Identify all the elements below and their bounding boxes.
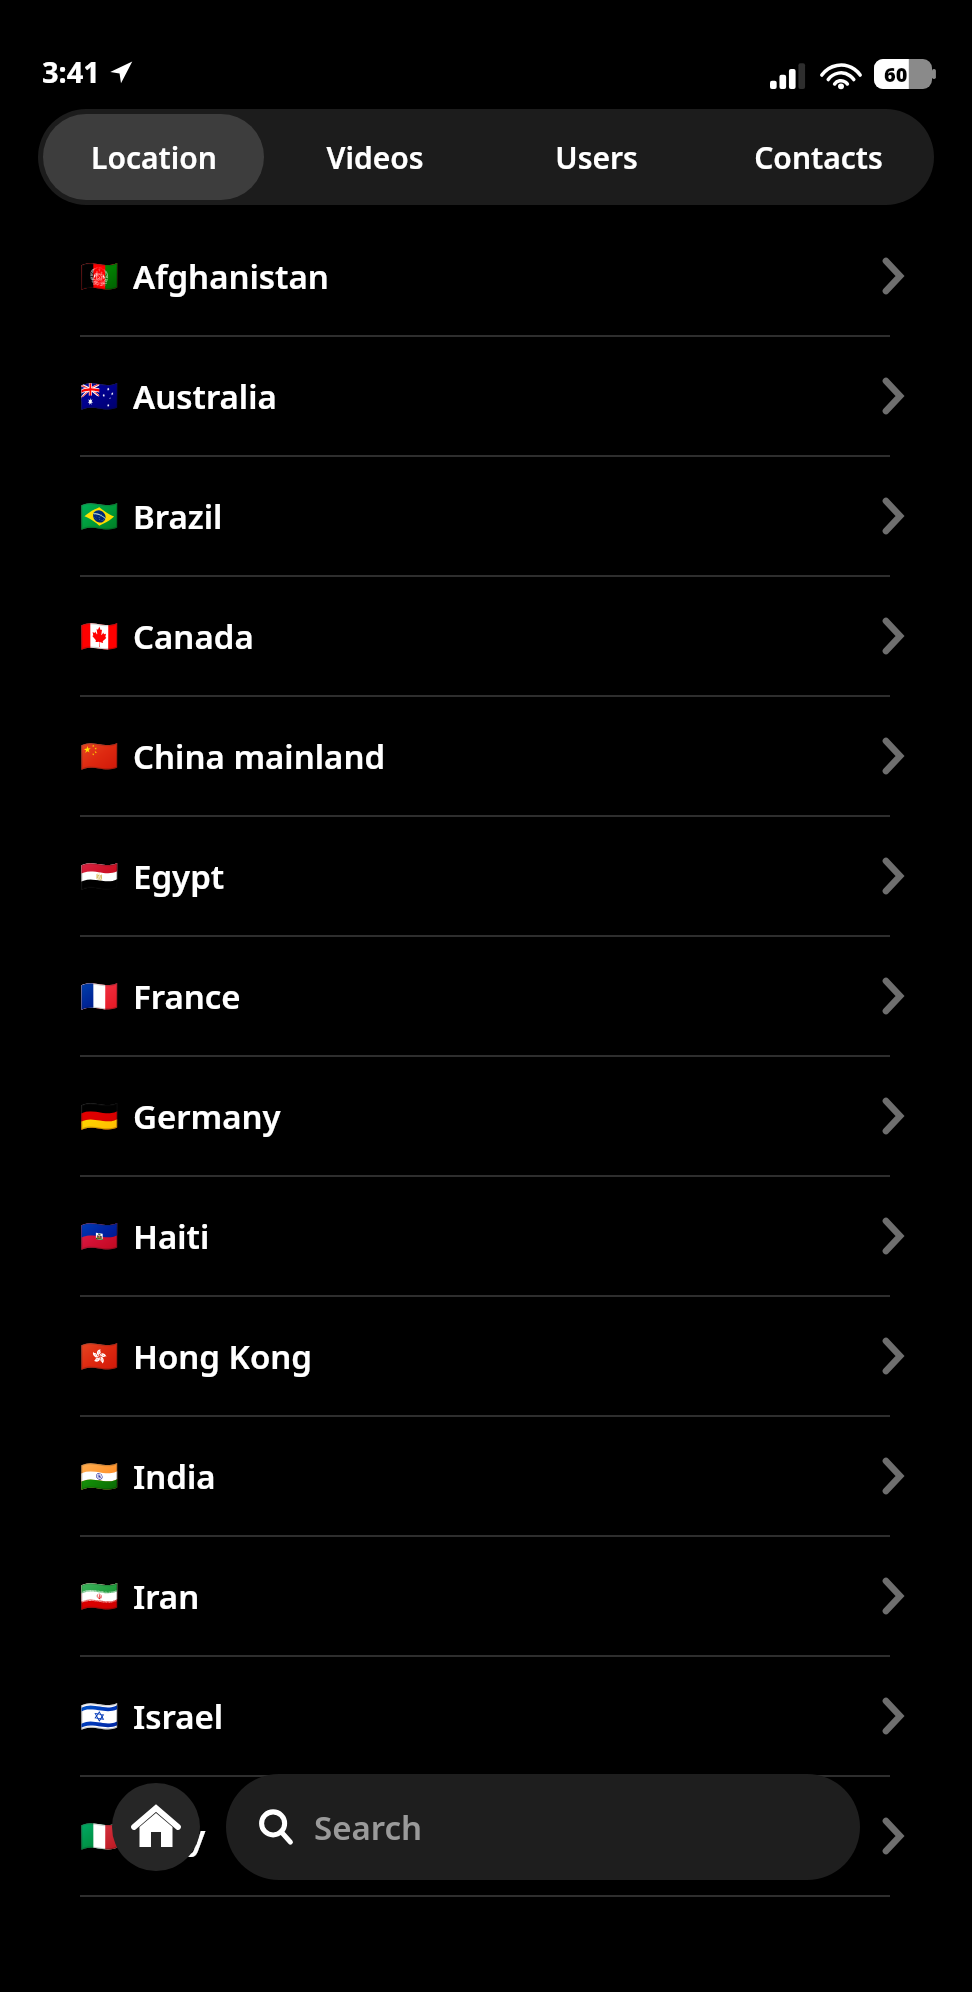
button[interactable]: Location xyxy=(43,114,264,200)
staticText: Italy xyxy=(133,1814,206,1859)
staticText: 🇩🇪 xyxy=(80,1098,119,1134)
staticText: 🇪🇬 xyxy=(80,858,119,894)
staticText: Hong Kong xyxy=(133,1334,313,1379)
staticText: Search xyxy=(314,1805,423,1850)
button[interactable]: 🇩🇪 xyxy=(0,1057,972,1175)
button[interactable]: Videos xyxy=(264,114,485,200)
staticText: Canada xyxy=(133,614,254,659)
staticText: 🇭🇹 xyxy=(80,1218,119,1254)
staticText: Egypt xyxy=(133,854,225,899)
button[interactable]: 🇮🇳 xyxy=(0,1417,972,1535)
staticText: China mainland xyxy=(133,734,386,779)
staticText: Israel xyxy=(133,1694,224,1739)
staticText: 🇨🇦 xyxy=(80,618,119,654)
button[interactable]: 🇭🇹 xyxy=(0,1177,972,1295)
button[interactable]: 🇮🇱 xyxy=(0,1657,972,1775)
staticText: Users xyxy=(555,137,638,178)
staticText: 🇮🇱 xyxy=(80,1698,119,1734)
staticText: Brazil xyxy=(133,494,223,539)
staticText: 3:41 xyxy=(42,52,100,91)
button[interactable]: 🇦🇺 xyxy=(0,337,972,455)
staticText: Afghanistan xyxy=(133,254,329,299)
staticText: Haiti xyxy=(133,1214,210,1259)
button[interactable]: Users xyxy=(485,114,707,200)
staticText: 🇨🇳 xyxy=(80,738,119,774)
staticText: India xyxy=(133,1454,216,1499)
staticText: 🇭🇰 xyxy=(80,1338,119,1374)
staticText: Iran xyxy=(133,1574,200,1619)
staticText: 🇧🇷 xyxy=(80,498,119,534)
staticText: 🇦🇫 xyxy=(80,258,119,294)
staticText: 60 xyxy=(884,61,908,88)
staticText: 🇮🇹 xyxy=(80,1818,119,1854)
button[interactable]: Contacts xyxy=(707,114,929,200)
button[interactable]: 🇦🇫 xyxy=(0,217,972,335)
button[interactable]: 🇧🇷 xyxy=(0,457,972,575)
staticText: 🇮🇷 xyxy=(80,1578,119,1614)
staticText: 🇫🇷 xyxy=(80,978,119,1014)
staticText: France xyxy=(133,974,241,1019)
staticText: 🇮🇳 xyxy=(80,1458,119,1494)
staticText: Contacts xyxy=(754,137,883,178)
button[interactable]: 🇮🇹 xyxy=(0,1777,972,1895)
button[interactable]: Home xyxy=(112,1783,200,1871)
staticText: Germany xyxy=(133,1094,281,1139)
button[interactable]: 🇨🇦 xyxy=(0,577,972,695)
button[interactable]: 🇨🇳 xyxy=(0,697,972,815)
staticText: 🇦🇺 xyxy=(80,378,119,414)
button[interactable]: 🇭🇰 xyxy=(0,1297,972,1415)
button[interactable]: 🇫🇷 xyxy=(0,937,972,1055)
button[interactable]: Search xyxy=(226,1774,860,1880)
button[interactable]: 🇪🇬 xyxy=(0,817,972,935)
staticText: Australia xyxy=(133,374,277,419)
staticText: Location xyxy=(91,137,217,178)
staticText: Videos xyxy=(326,137,424,178)
button[interactable]: 🇮🇷 xyxy=(0,1537,972,1655)
